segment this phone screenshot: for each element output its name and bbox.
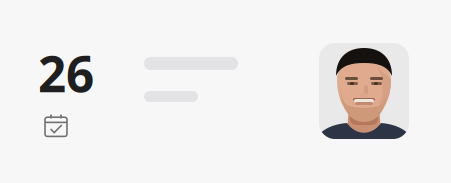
staticText: 26	[38, 40, 94, 106]
